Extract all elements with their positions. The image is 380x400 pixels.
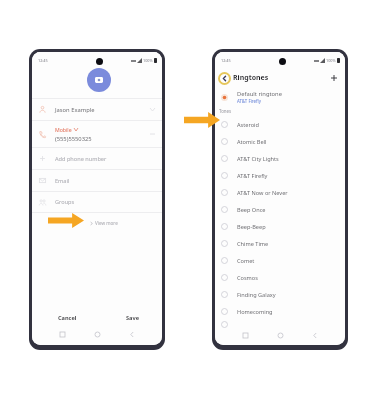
- button[interactable]: Home: [92, 329, 102, 339]
- staticText: Beep-Beep: [237, 223, 266, 231]
- staticText: AT&T Now or Never: [237, 189, 288, 197]
- button[interactable]: Back: [217, 71, 232, 86]
- staticText: AT&T City Lights: [237, 155, 279, 163]
- button[interactable]: Beep Once: [215, 201, 345, 218]
- button[interactable]: Comet: [215, 252, 345, 269]
- button[interactable]: Add ringtone: [329, 73, 339, 83]
- staticText: Jason Example: [55, 106, 95, 114]
- staticText: Cancel: [58, 314, 77, 322]
- button[interactable]: Recents: [240, 330, 250, 340]
- button[interactable]: Save: [103, 308, 162, 327]
- button[interactable]: Beep-Beep: [215, 218, 345, 235]
- staticText: Chime Time: [237, 240, 269, 248]
- staticText: (555)5550325: [55, 135, 92, 143]
- button[interactable]: Mobile: [32, 121, 162, 147]
- button[interactable]: Back: [310, 330, 320, 340]
- staticText: 12:45: [221, 58, 231, 63]
- staticText: View more: [95, 220, 118, 226]
- staticText: 12:45: [38, 58, 48, 63]
- staticText: Finding Galaxy: [237, 291, 276, 299]
- button[interactable]: Email: [32, 170, 162, 191]
- staticText: Add phone number: [55, 155, 107, 163]
- staticText: Comet: [237, 257, 255, 265]
- button[interactable]: Recents: [57, 329, 67, 339]
- button[interactable]: Cancel: [32, 308, 103, 327]
- button[interactable]: View more: [32, 213, 162, 233]
- staticText: Cosmos: [237, 274, 258, 282]
- staticText: AT&T Firefly: [237, 98, 261, 104]
- button[interactable]: Finding Galaxy: [215, 286, 345, 303]
- button[interactable]: AT&T Now or Never: [215, 184, 345, 201]
- button[interactable]: Home: [275, 330, 285, 340]
- button[interactable]: Asteroid: [215, 116, 345, 133]
- button[interactable]: [215, 320, 345, 328]
- staticText: Asteroid: [237, 121, 259, 129]
- button[interactable]: Jason Example: [32, 99, 162, 120]
- button[interactable]: Default ringtone: [215, 88, 345, 106]
- staticText: Default ringtone: [237, 90, 282, 98]
- staticText: Tones: [219, 108, 232, 114]
- staticText: 100%: [143, 58, 153, 63]
- button[interactable]: AT&T City Lights: [215, 150, 345, 167]
- staticText: Atomic Bell: [237, 138, 267, 146]
- staticText: Ringtones: [233, 73, 269, 83]
- staticText: Homecoming: [237, 308, 273, 316]
- staticText: Groups: [55, 198, 75, 206]
- staticText: 100%: [326, 58, 336, 63]
- staticText: AT&T Firefly: [237, 172, 268, 180]
- button[interactable]: Homecoming: [215, 303, 345, 320]
- staticText: Email: [55, 177, 70, 185]
- button[interactable]: Groups: [32, 192, 162, 212]
- staticText: Save: [126, 314, 139, 322]
- button[interactable]: Atomic Bell: [215, 133, 345, 150]
- button[interactable]: Back: [127, 329, 137, 339]
- staticText: Beep Once: [237, 206, 266, 214]
- button[interactable]: Cosmos: [215, 269, 345, 286]
- staticText: Mobile: [55, 126, 72, 133]
- button[interactable]: AT&T Firefly: [215, 167, 345, 184]
- button[interactable]: Chime Time: [215, 235, 345, 252]
- button[interactable]: Add phone number: [32, 148, 162, 169]
